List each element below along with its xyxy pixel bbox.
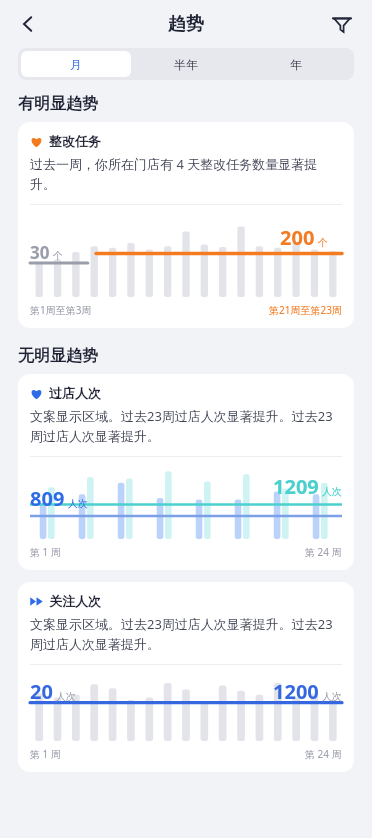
staticText: 无明显趋势 — [18, 346, 98, 366]
staticText: 人次 — [68, 497, 88, 510]
staticText: 第 1 周 — [30, 545, 61, 559]
staticText: 人次 — [322, 485, 342, 498]
staticText: 趋势 — [168, 13, 204, 36]
staticText: 过店人次 — [49, 385, 101, 401]
button[interactable]: 半年 — [131, 51, 241, 77]
button[interactable]: 年 — [241, 51, 351, 77]
staticText: 年 — [290, 57, 302, 72]
staticText: 20 — [30, 678, 53, 705]
button[interactable]: Filter — [322, 4, 362, 44]
staticText: 30 — [30, 241, 50, 264]
staticText: 第 24 周 — [305, 747, 342, 761]
staticText: 809 — [30, 485, 65, 512]
staticText: 第1周至第3周 — [30, 303, 92, 317]
staticText: 个 — [318, 236, 328, 249]
staticText: 第 24 周 — [305, 545, 342, 559]
staticText: 文案显示区域。过去23周过店人次显著提升。过去23周过店人次显著提升。 — [30, 615, 342, 653]
staticText: 文案显示区域。过去23周过店人次显著提升。过去23周过店人次显著提升。 — [30, 407, 342, 445]
button[interactable]: 整改任务 — [18, 122, 354, 328]
staticText: 半年 — [174, 57, 198, 72]
staticText: 个 — [53, 249, 63, 262]
staticText: 1200 — [273, 678, 319, 705]
button[interactable]: 关注人次 — [18, 582, 354, 772]
staticText: 1209 — [273, 473, 319, 500]
staticText: 月 — [70, 57, 82, 72]
staticText: 人次 — [56, 690, 76, 703]
staticText: 有明显趋势 — [18, 94, 98, 114]
staticText: 第21周至第23周 — [269, 303, 342, 317]
staticText: 200 — [280, 224, 315, 251]
staticText: 过去一周，你所在门店有 4 天整改任务数量显著提升。 — [30, 155, 342, 193]
staticText: 关注人次 — [49, 593, 101, 609]
staticText: 人次 — [322, 690, 342, 703]
button[interactable]: Back — [8, 4, 48, 44]
button[interactable]: 过店人次 — [18, 374, 354, 570]
staticText: 整改任务 — [49, 133, 101, 149]
staticText: 第 1 周 — [30, 747, 61, 761]
button[interactable]: 月 — [21, 51, 131, 77]
